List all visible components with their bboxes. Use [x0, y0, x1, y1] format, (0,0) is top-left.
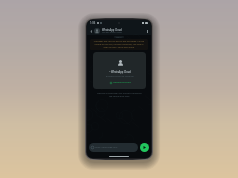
staticText: last seen recently today: [102, 31, 122, 33]
button[interactable]: Send: [140, 143, 149, 152]
staticText: WhatsApp Cloud: [102, 28, 122, 31]
staticText: Messages and calls are end-to-end encryp…: [92, 40, 146, 49]
button[interactable]: https://wabridge.com: [89, 143, 138, 152]
staticText: https://wabridge.com: [95, 146, 118, 149]
staticText: Business account on WhatsApp: [106, 75, 134, 78]
button[interactable]: Message business: [110, 81, 131, 84]
button[interactable]: Back: [88, 28, 94, 34]
staticText: ~ WhatsApp Cloud: [109, 70, 131, 73]
staticText: Message business: [113, 81, 131, 84]
staticText: 1:06: [90, 21, 96, 25]
staticText: TODAY: [116, 36, 122, 38]
staticText: Welcome to WhatsApp! Your account is con…: [97, 92, 142, 98]
button[interactable]: More options: [144, 28, 150, 34]
